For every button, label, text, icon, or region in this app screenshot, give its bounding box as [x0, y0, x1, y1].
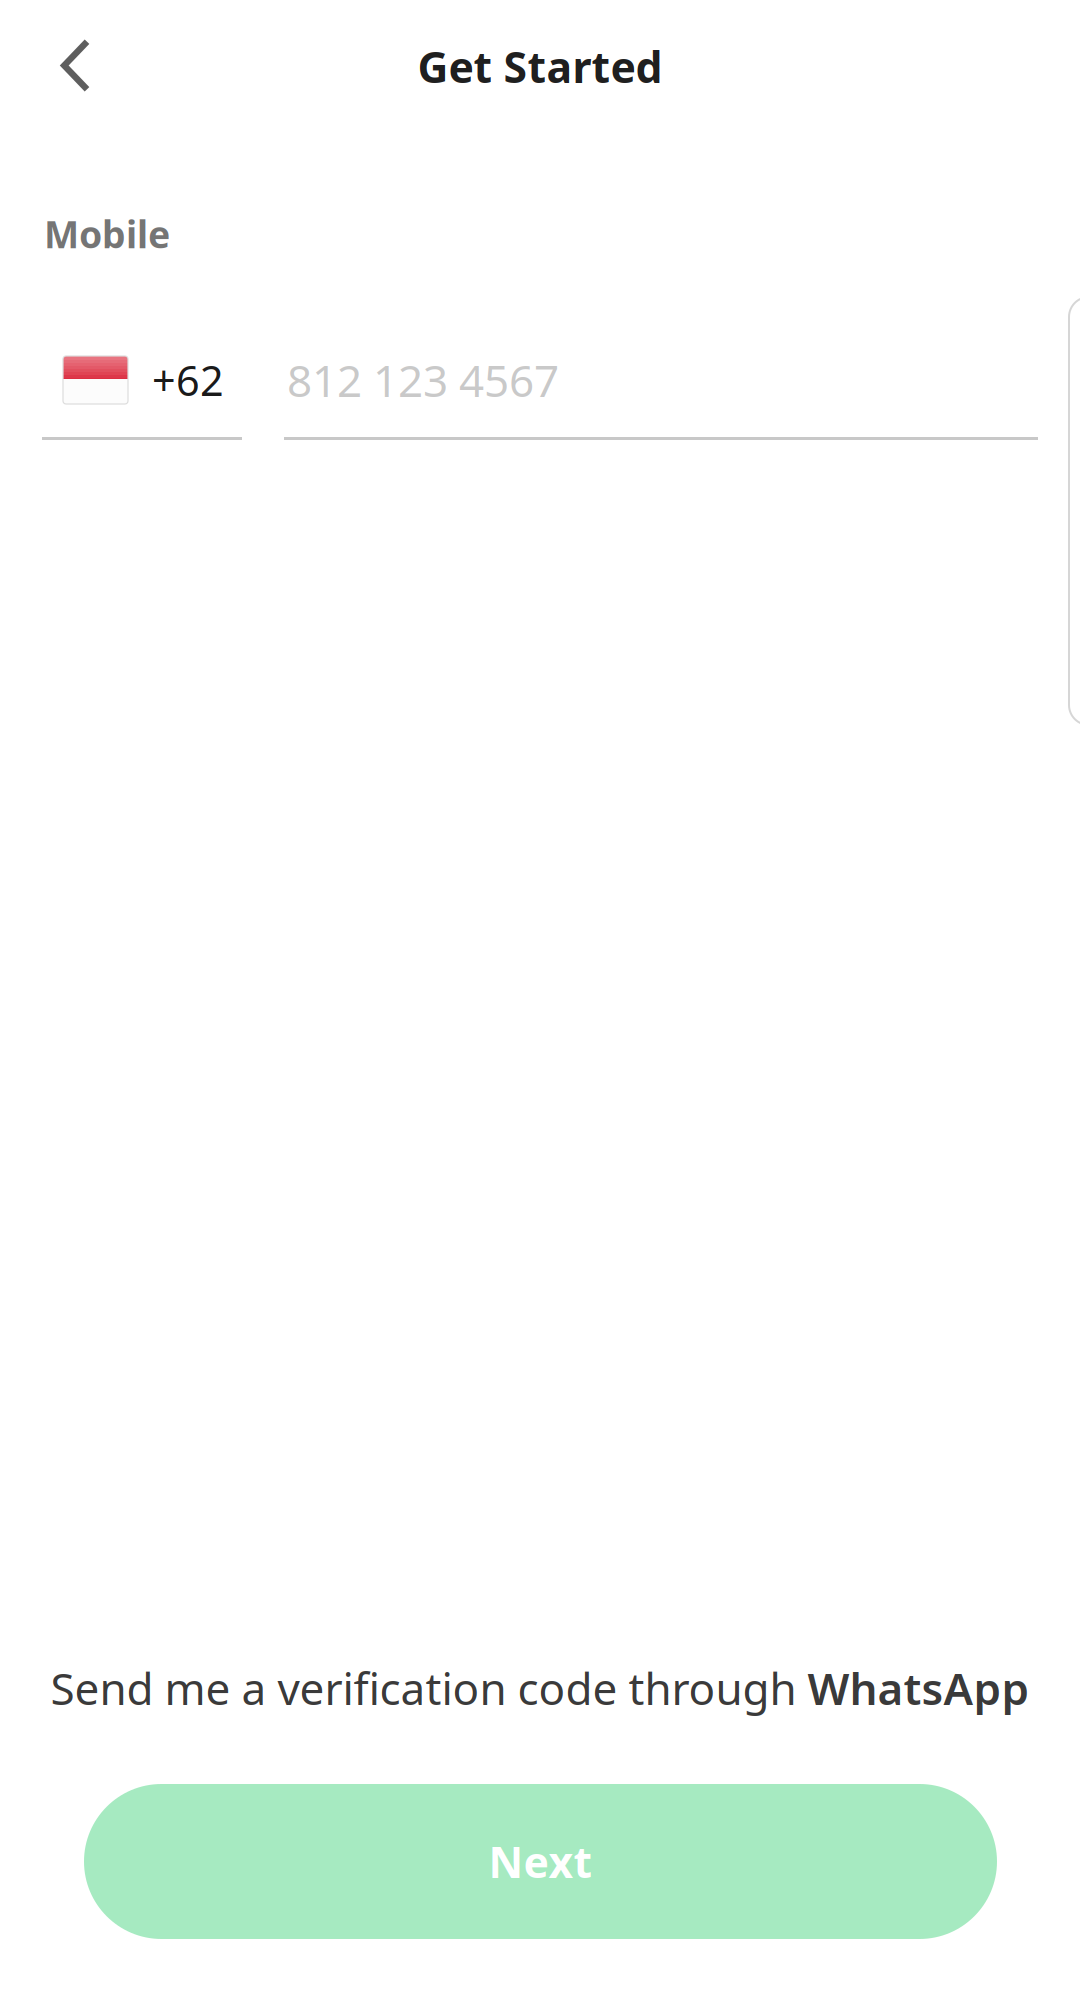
staticText: 812 123 4567 — [287, 351, 559, 409]
staticText: Send me a verification code through What… — [50, 1659, 1029, 1717]
button[interactable]: Send me a verification code through What… — [0, 1657, 1080, 1719]
staticText: Mobile — [44, 209, 170, 259]
staticText: Get Started — [417, 38, 662, 95]
button[interactable]: Phone number — [284, 332, 1038, 440]
button[interactable]: Country code +62 — [42, 332, 242, 440]
staticText: Next — [488, 1833, 592, 1890]
button[interactable]: Next — [84, 1784, 997, 1939]
staticText: +62 — [152, 353, 224, 407]
button[interactable]: Back — [0, 14, 124, 116]
